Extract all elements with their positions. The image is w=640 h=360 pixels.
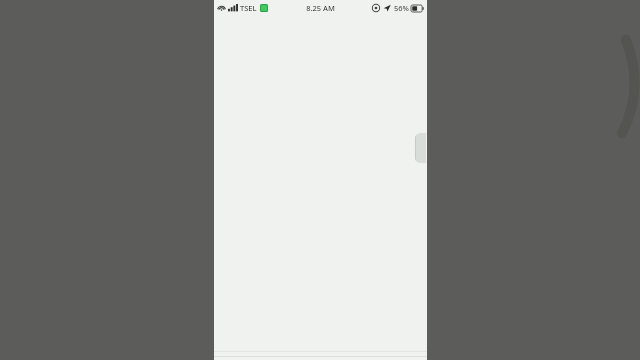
other: Scroll indicator (415, 133, 426, 163)
other: Carrier badge (261, 5, 267, 11)
staticText: TSEL (240, 3, 257, 13)
other: Alarm (372, 4, 380, 12)
staticText: 8.25 AM (306, 3, 335, 13)
staticText: 56% (394, 3, 409, 13)
other: Location (383, 4, 391, 12)
